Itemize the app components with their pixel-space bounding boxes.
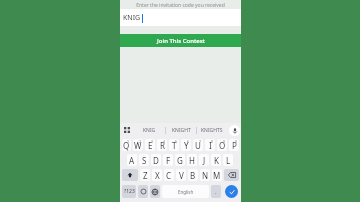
staticText: O xyxy=(219,140,226,151)
staticText: Q xyxy=(123,140,130,151)
staticText: R xyxy=(160,140,165,151)
button[interactable]: D xyxy=(151,154,161,166)
staticText: . xyxy=(215,188,217,196)
button[interactable]: KNIGHTS xyxy=(197,123,227,137)
button[interactable]: B xyxy=(188,169,198,181)
staticText: 4 xyxy=(163,139,166,144)
staticText: D xyxy=(153,155,159,166)
button[interactable]: V xyxy=(176,169,186,181)
button[interactable]: L xyxy=(223,154,233,166)
button[interactable]: Y xyxy=(181,139,191,151)
button[interactable]: Keyboard menu xyxy=(120,123,134,137)
staticText: E xyxy=(148,140,153,151)
button[interactable]: O xyxy=(217,139,227,151)
button[interactable]: Shift xyxy=(122,169,138,181)
button[interactable]: KNIGHT xyxy=(166,123,196,137)
staticText: 6 xyxy=(187,139,190,144)
button[interactable]: Emoji xyxy=(138,185,148,198)
staticText: I xyxy=(209,140,212,151)
staticText: English xyxy=(178,189,194,195)
button[interactable]: F xyxy=(163,154,173,166)
button[interactable]: Enter xyxy=(225,185,238,198)
staticText: S xyxy=(142,155,147,166)
staticText: X xyxy=(155,170,160,181)
staticText: Y xyxy=(184,140,189,151)
staticText: M xyxy=(213,170,221,181)
button[interactable]: . xyxy=(211,185,221,198)
staticText: 3 xyxy=(151,139,154,144)
staticText: KNIGHT xyxy=(172,127,191,134)
button[interactable]: Change language xyxy=(150,185,160,198)
button[interactable]: J xyxy=(199,154,209,166)
staticText: W xyxy=(134,140,142,151)
staticText: V xyxy=(179,170,184,181)
button[interactable]: R xyxy=(157,139,167,151)
button[interactable]: T xyxy=(169,139,179,151)
button[interactable]: English xyxy=(162,185,209,198)
button[interactable]: S xyxy=(139,154,149,166)
button[interactable]: Q xyxy=(122,139,131,151)
staticText: 9 xyxy=(223,139,226,144)
staticText: 1 xyxy=(127,139,130,144)
staticText: 8 xyxy=(211,139,214,144)
button[interactable]: E xyxy=(145,139,155,151)
button[interactable]: P xyxy=(229,139,239,151)
staticText: Enter the invitation code you received xyxy=(136,2,225,9)
button[interactable]: KNIG xyxy=(134,123,165,137)
staticText: L xyxy=(226,155,231,166)
staticText: 0 xyxy=(235,139,238,144)
button[interactable]: G xyxy=(175,154,185,166)
staticText: B xyxy=(190,170,196,181)
staticText: N xyxy=(202,170,209,181)
staticText: G xyxy=(177,155,183,166)
button[interactable]: H xyxy=(187,154,197,166)
button[interactable]: I xyxy=(205,139,215,151)
staticText: 5 xyxy=(175,139,178,144)
staticText: KNIGHTS xyxy=(201,127,223,134)
staticText: ?123 xyxy=(124,188,135,195)
button[interactable]: X xyxy=(152,169,162,181)
staticText: H xyxy=(189,155,195,166)
button[interactable]: C xyxy=(164,169,174,181)
button[interactable]: W xyxy=(133,139,143,151)
button[interactable]: K xyxy=(211,154,221,166)
button[interactable]: M xyxy=(212,169,222,181)
staticText: 7 xyxy=(199,139,202,144)
button[interactable]: Z xyxy=(140,169,150,181)
button[interactable]: U xyxy=(193,139,203,151)
staticText: Join This Contest xyxy=(157,37,205,45)
staticText: F xyxy=(166,155,171,166)
button[interactable]: Join This Contest xyxy=(120,34,241,47)
button[interactable]: Voice input xyxy=(227,123,241,137)
staticText: J xyxy=(203,155,206,166)
staticText: P xyxy=(232,140,237,151)
staticText: 2 xyxy=(139,139,142,144)
staticText: KNIG xyxy=(143,127,156,134)
button[interactable]: ?123 xyxy=(122,185,136,198)
button[interactable]: KNIG xyxy=(120,9,241,26)
staticText: A xyxy=(129,155,135,166)
staticText: KNIG xyxy=(123,13,141,23)
staticText: T xyxy=(172,140,177,151)
staticText: U xyxy=(195,140,201,151)
staticText: Z xyxy=(143,170,148,181)
staticText: C xyxy=(166,170,172,181)
button[interactable]: N xyxy=(200,169,210,181)
staticText: K xyxy=(214,155,219,166)
button[interactable]: Backspace xyxy=(224,169,239,181)
button[interactable]: A xyxy=(127,154,137,166)
